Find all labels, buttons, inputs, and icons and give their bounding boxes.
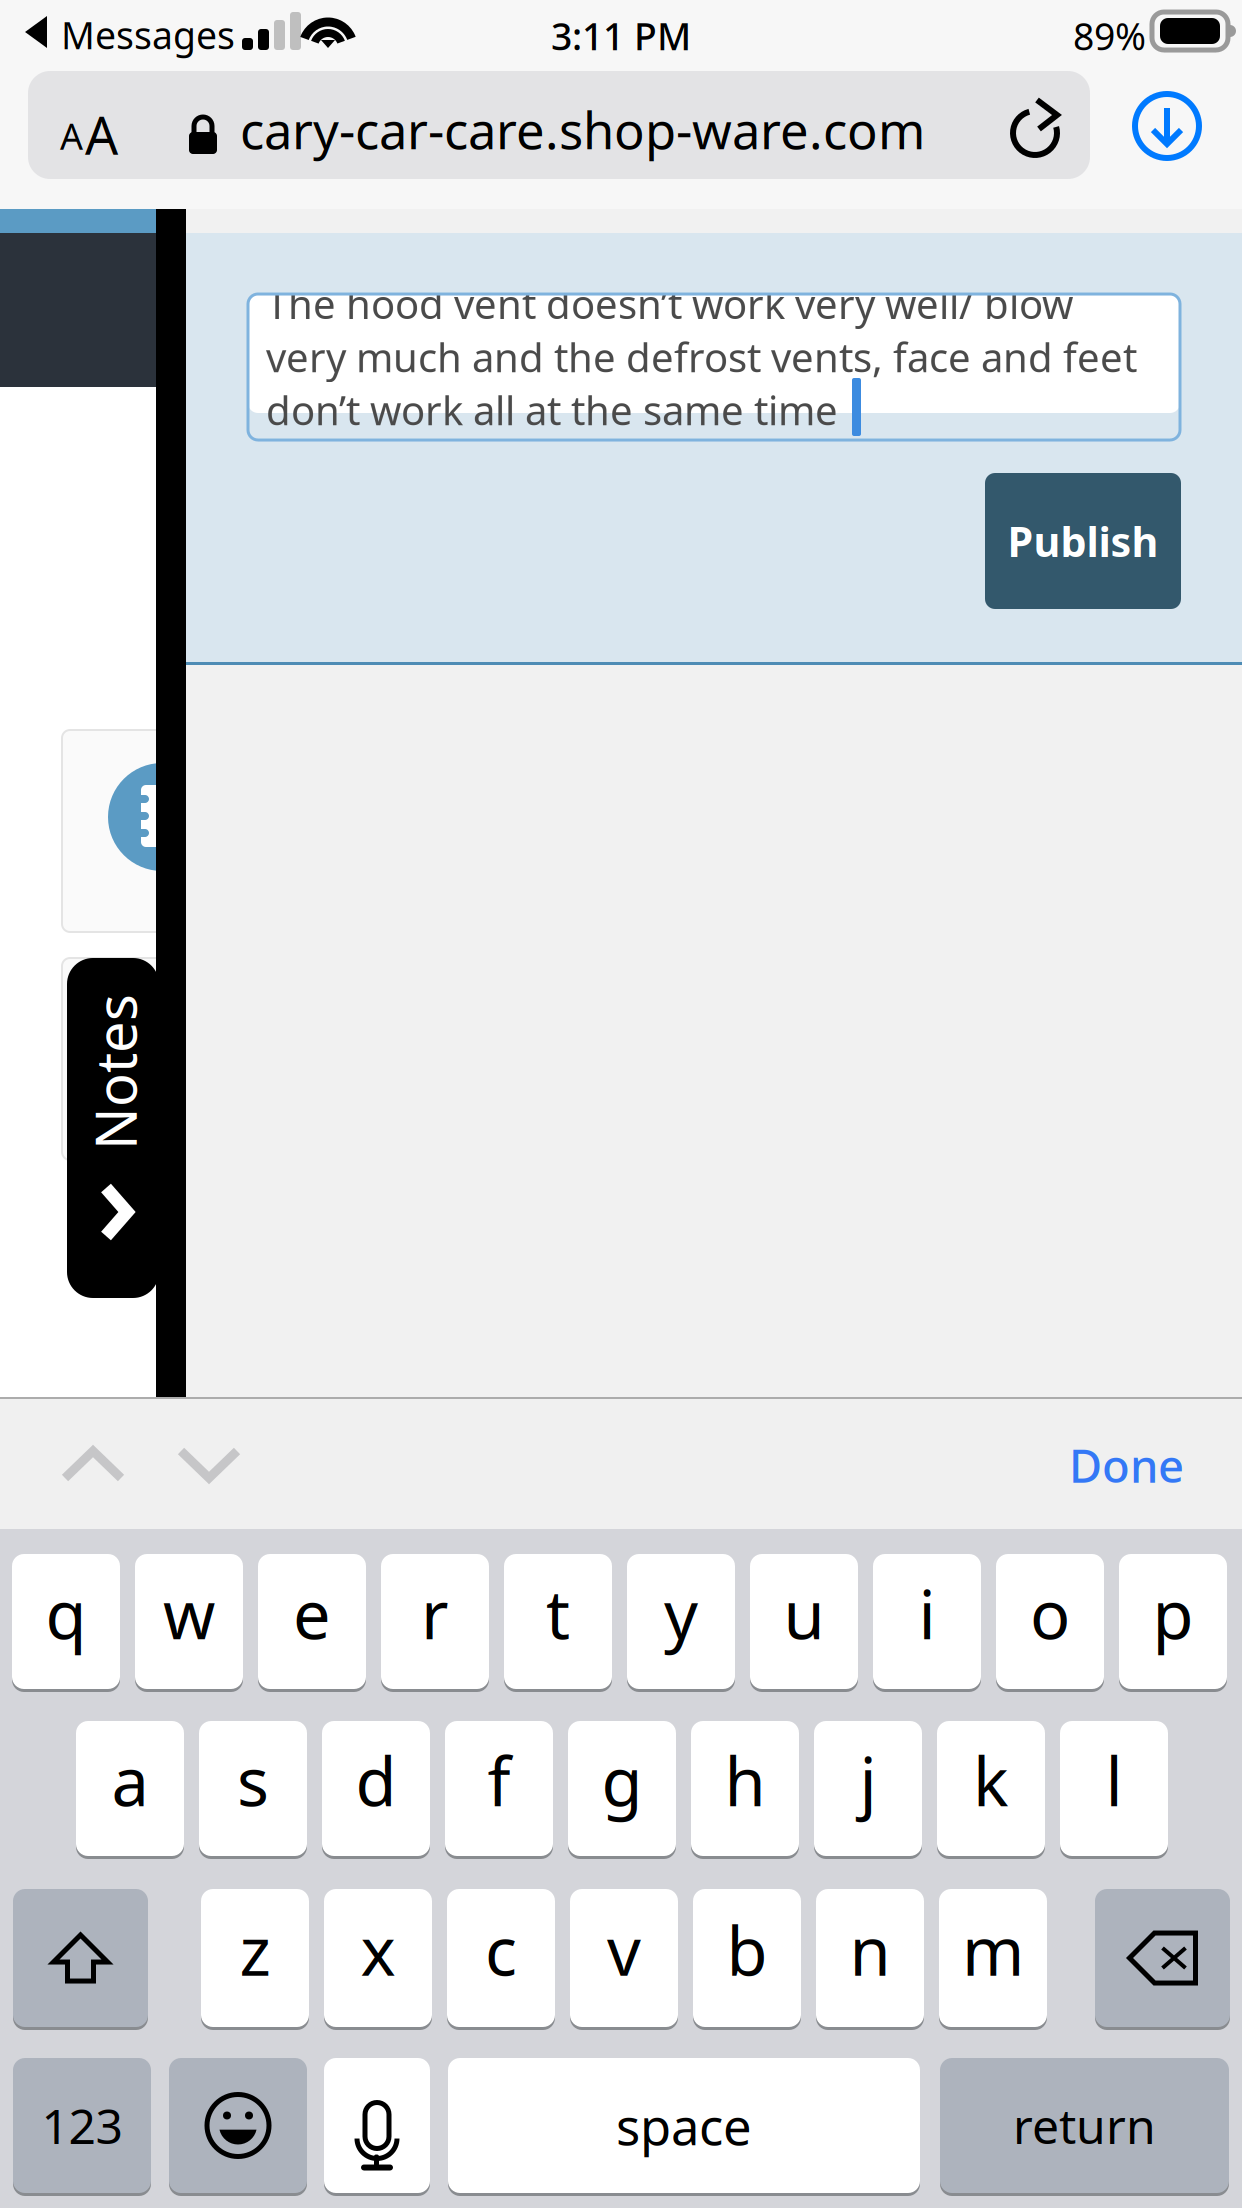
staticText: s [237, 1736, 269, 1825]
button[interactable]: v [570, 1889, 678, 2027]
staticText: A [85, 100, 118, 169]
button[interactable]: Delete [1095, 1889, 1230, 2027]
button[interactable]: Shift [13, 1889, 148, 2027]
button[interactable]: Dictate [324, 2058, 430, 2193]
button[interactable]: c [447, 1889, 555, 2027]
button[interactable]: 123 [13, 2058, 151, 2193]
staticText: cary-car-care.shop-ware.com [240, 96, 925, 163]
staticText: v [607, 1906, 641, 1994]
button[interactable]: p [1119, 1554, 1227, 1689]
button[interactable]: n [816, 1889, 924, 2027]
staticText: e [293, 1569, 331, 1658]
button[interactable]: g [568, 1721, 676, 1856]
staticText: z [239, 1906, 270, 1994]
button[interactable]: u [750, 1554, 858, 1689]
staticText: return [1013, 2094, 1156, 2157]
button[interactable]: s [199, 1721, 307, 1856]
button[interactable]: d [322, 1721, 430, 1856]
button[interactable]: b [693, 1889, 801, 2027]
button[interactable]: m [939, 1889, 1047, 2027]
button[interactable]: h [691, 1721, 799, 1856]
staticText: b [726, 1906, 767, 1994]
button[interactable]: t [504, 1554, 612, 1689]
staticText: A [60, 112, 83, 160]
button[interactable]: Next field [175, 1444, 243, 1486]
button[interactable]: o [996, 1554, 1104, 1689]
staticText: 89% [1073, 11, 1146, 61]
button[interactable]: i [873, 1554, 981, 1689]
staticText: Notes [37, 1035, 193, 1109]
button[interactable]: j [814, 1721, 922, 1856]
button[interactable]: k [937, 1721, 1045, 1856]
staticText: m [962, 1906, 1024, 1994]
staticText: d [355, 1736, 396, 1825]
button[interactable]: Emoji [169, 2058, 307, 2193]
staticText: f [487, 1736, 510, 1825]
staticText: space [616, 2092, 752, 2159]
staticText: y [664, 1569, 698, 1658]
staticText: c [485, 1906, 517, 1994]
staticText: x [360, 1906, 395, 1994]
staticText: n [849, 1906, 890, 1994]
staticText: r [421, 1569, 449, 1658]
staticText: g [601, 1736, 642, 1825]
staticText: Messages [61, 10, 235, 60]
button[interactable]: x [324, 1889, 432, 2027]
button[interactable]: y [627, 1554, 735, 1689]
button[interactable]: space [448, 2058, 920, 2193]
staticText: 123 [41, 2094, 122, 2157]
staticText: Publish [1007, 514, 1158, 568]
button[interactable]: Done [1024, 1435, 1184, 1505]
button[interactable]: Publish [985, 473, 1181, 609]
button[interactable]: r [381, 1554, 489, 1689]
staticText: 3:11 PM [551, 11, 691, 61]
staticText: j [859, 1736, 876, 1825]
button[interactable]: return [940, 2058, 1229, 2193]
staticText: i [918, 1569, 935, 1658]
button[interactable]: Reload [1005, 93, 1071, 159]
button[interactable] [28, 71, 1090, 179]
button[interactable]: Notes [67, 958, 159, 1298]
button[interactable]: a [76, 1721, 184, 1856]
button[interactable]: e [258, 1554, 366, 1689]
staticText: u [783, 1569, 824, 1658]
staticText: w [163, 1569, 215, 1658]
button[interactable]: f [445, 1721, 553, 1856]
button[interactable]: Previous field [59, 1444, 127, 1486]
staticText: h [724, 1736, 765, 1825]
button[interactable]: q [12, 1554, 120, 1689]
staticText: p [1152, 1569, 1193, 1658]
staticText: Done [1069, 1435, 1184, 1495]
button[interactable]: Text size [60, 100, 160, 160]
staticText: l [1105, 1736, 1122, 1825]
staticText: k [973, 1736, 1009, 1825]
button[interactable]: w [135, 1554, 243, 1689]
button[interactable]: l [1060, 1721, 1168, 1856]
staticText: q [45, 1569, 86, 1658]
staticText: t [546, 1569, 570, 1658]
button[interactable]: Downloads [1135, 94, 1199, 158]
button[interactable]: z [201, 1889, 309, 2027]
staticText: The hood vent doesn’t work very well/ bl… [266, 277, 1137, 436]
staticText: a [111, 1736, 148, 1825]
staticText: o [1030, 1569, 1070, 1658]
